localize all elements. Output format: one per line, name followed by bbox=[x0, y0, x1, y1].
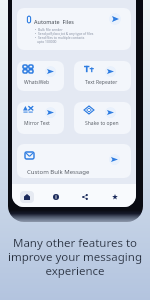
button[interactable]: Send bbox=[109, 154, 120, 165]
staticText: • bbox=[35, 27, 38, 31]
button[interactable]: Share bbox=[70, 184, 100, 207]
staticText: • bbox=[35, 31, 38, 35]
button[interactable]: Send bbox=[105, 66, 116, 77]
button[interactable]: Premium bbox=[41, 184, 70, 207]
staticText: Send files to multiple contacts bbox=[38, 35, 85, 39]
staticText: Bulk File sender bbox=[38, 27, 63, 31]
staticText: Text Repeater bbox=[85, 79, 118, 86]
staticText: Shake to open bbox=[85, 120, 119, 127]
button[interactable]: Send bbox=[105, 107, 116, 118]
button[interactable]: Home bbox=[12, 184, 41, 207]
staticText: Automate Files bbox=[34, 18, 74, 25]
button[interactable]: Send bbox=[74, 61, 131, 91]
button[interactable]: Send bbox=[109, 13, 121, 25]
button[interactable]: Send bbox=[17, 61, 64, 91]
staticText: WhatsWeb bbox=[24, 79, 50, 86]
staticText: Custom Bulk Message bbox=[27, 168, 90, 176]
button[interactable]: Automate Files bbox=[17, 8, 131, 50]
staticText: Many other features to improve your mess… bbox=[0, 235, 150, 279]
staticText: Mirror Text bbox=[24, 120, 50, 127]
staticText: Send pdf,docx,txt & any type of files bbox=[38, 31, 94, 35]
staticText: • bbox=[35, 35, 38, 39]
button[interactable]: Send bbox=[45, 107, 56, 118]
button[interactable]: Send bbox=[74, 102, 131, 134]
button[interactable]: Send bbox=[17, 102, 64, 134]
staticText: upto 100000 bbox=[37, 39, 57, 43]
button[interactable]: Send bbox=[45, 66, 56, 77]
button[interactable]: Send bbox=[17, 144, 131, 178]
button[interactable]: Rate bbox=[100, 184, 130, 207]
